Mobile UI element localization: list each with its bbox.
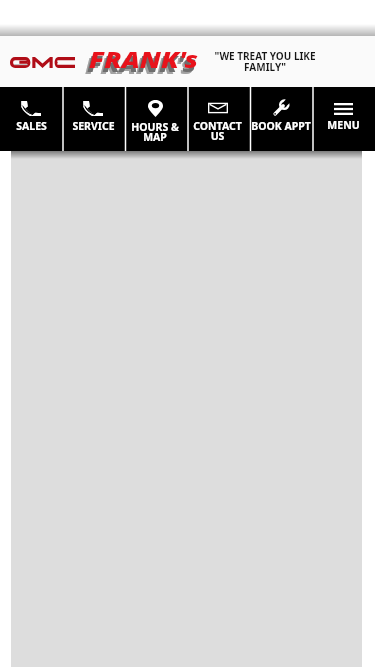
- staticText: FRANK's: [87, 48, 197, 78]
- button[interactable]: HOURS & MAP: [124, 87, 186, 151]
- staticText: "WE TREAT YOU LIKE FAMILY": [214, 49, 316, 74]
- button[interactable]: SERVICE: [62, 87, 124, 151]
- button[interactable]: SALES: [0, 87, 62, 151]
- staticText: HOURS & MAP: [131, 120, 179, 144]
- button[interactable]: CONTACT US: [186, 87, 249, 151]
- other: GMC: [10, 57, 75, 68]
- staticText: CONTACT US: [193, 119, 242, 143]
- button[interactable]: MENU: [312, 87, 375, 151]
- staticText: SALES: [16, 119, 47, 133]
- button[interactable]: BOOK APPT: [249, 87, 312, 151]
- staticText: FRANK's: [85, 50, 195, 80]
- staticText: BOOK APPT: [251, 119, 311, 133]
- staticText: SERVICE: [72, 119, 115, 133]
- staticText: MENU: [327, 118, 360, 132]
- staticText: FRANK's: [89, 44, 199, 74]
